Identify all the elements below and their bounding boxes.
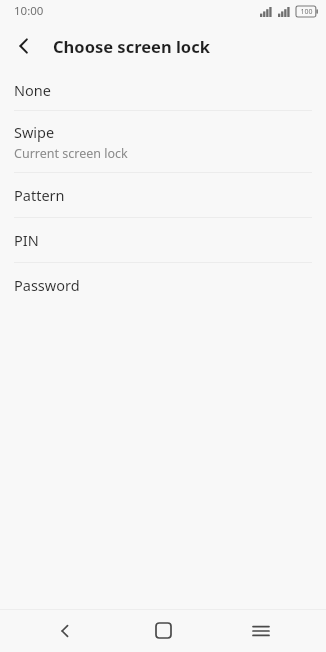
staticText: Password — [14, 275, 80, 295]
button[interactable]: PIN — [0, 218, 326, 262]
staticText: 100 — [300, 7, 313, 17]
button[interactable]: None — [0, 70, 326, 110]
button[interactable]: Swipe — [0, 111, 326, 172]
staticText: Current screen lock — [14, 145, 128, 162]
button[interactable]: Password — [0, 263, 326, 307]
button[interactable]: Recent apps — [237, 609, 285, 652]
staticText: Choose screen lock — [53, 35, 210, 57]
button[interactable]: Pattern — [0, 173, 326, 217]
staticText: None — [14, 80, 51, 100]
button[interactable]: Back — [0, 22, 48, 70]
button[interactable]: Home — [139, 609, 187, 652]
staticText: PIN — [14, 230, 39, 250]
staticText: Pattern — [14, 185, 65, 205]
button[interactable]: Back — [41, 609, 89, 652]
staticText: Swipe — [14, 122, 55, 142]
staticText: 10:00 — [14, 3, 44, 19]
